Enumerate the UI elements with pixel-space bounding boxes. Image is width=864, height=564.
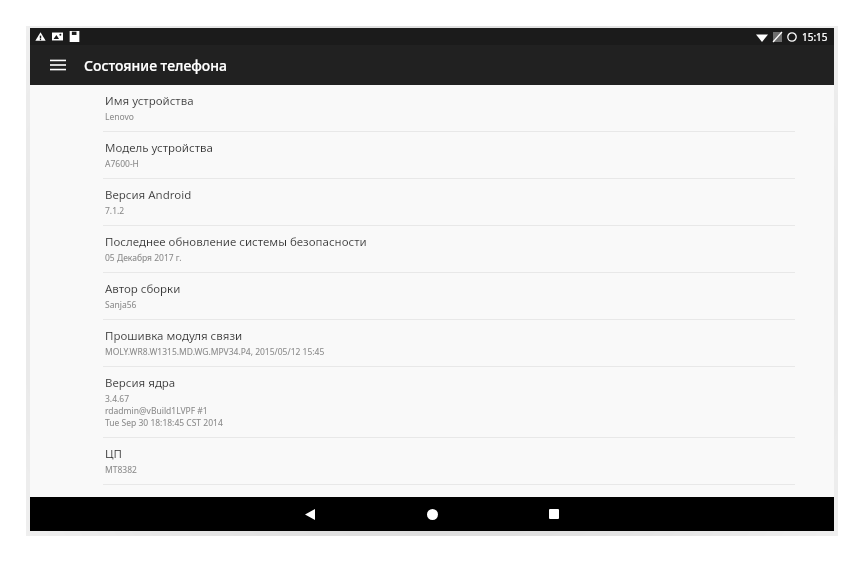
button[interactable]: Последнее обновление системы безопасност… — [30, 226, 834, 273]
button[interactable]: Имя устройства — [30, 85, 834, 132]
staticText: MT8382 — [105, 464, 137, 476]
staticText: Прошивка модуля связи — [105, 328, 243, 344]
staticText: 3.4.67 — [105, 393, 130, 405]
staticText: MOLY.WR8.W1315.MD.WG.MPV34.P4, 2015/05/1… — [105, 346, 325, 358]
button[interactable]: Автор сборки — [30, 273, 834, 320]
staticText: Имя устройства — [105, 93, 194, 109]
button[interactable]: Версия ядра — [30, 367, 834, 438]
staticText: Tue Sep 30 18:18:45 CST 2014 — [105, 417, 223, 429]
staticText: rdadmin@vBuild1LVPF #1 — [105, 405, 208, 417]
staticText: A7600-H — [105, 158, 139, 170]
staticText: 05 Декабря 2017 г. — [105, 252, 182, 264]
staticText: 7.1.2 — [105, 205, 125, 217]
button[interactable]: Back — [290, 497, 330, 531]
button[interactable]: Прошивка модуля связи — [30, 320, 834, 367]
staticText: 15:15 — [802, 30, 828, 44]
staticText: Версия Android — [105, 187, 192, 203]
staticText: Последнее обновление системы безопасност… — [105, 234, 367, 250]
staticText: Lenovo — [105, 111, 134, 123]
button[interactable]: Open navigation menu — [40, 47, 76, 83]
staticText: Автор сборки — [105, 281, 181, 297]
button[interactable]: Версия Android — [30, 179, 834, 226]
staticText: ЦП — [105, 446, 122, 462]
button[interactable]: Recent apps — [534, 497, 574, 531]
button[interactable]: Модель устройства — [30, 132, 834, 179]
button[interactable]: ЦП — [30, 438, 834, 485]
staticText: Sanja56 — [105, 299, 137, 311]
staticText: Состояние телефона — [84, 56, 228, 75]
staticText: Модель устройства — [105, 140, 213, 156]
button[interactable]: Home — [412, 497, 452, 531]
staticText: Версия ядра — [105, 375, 176, 391]
